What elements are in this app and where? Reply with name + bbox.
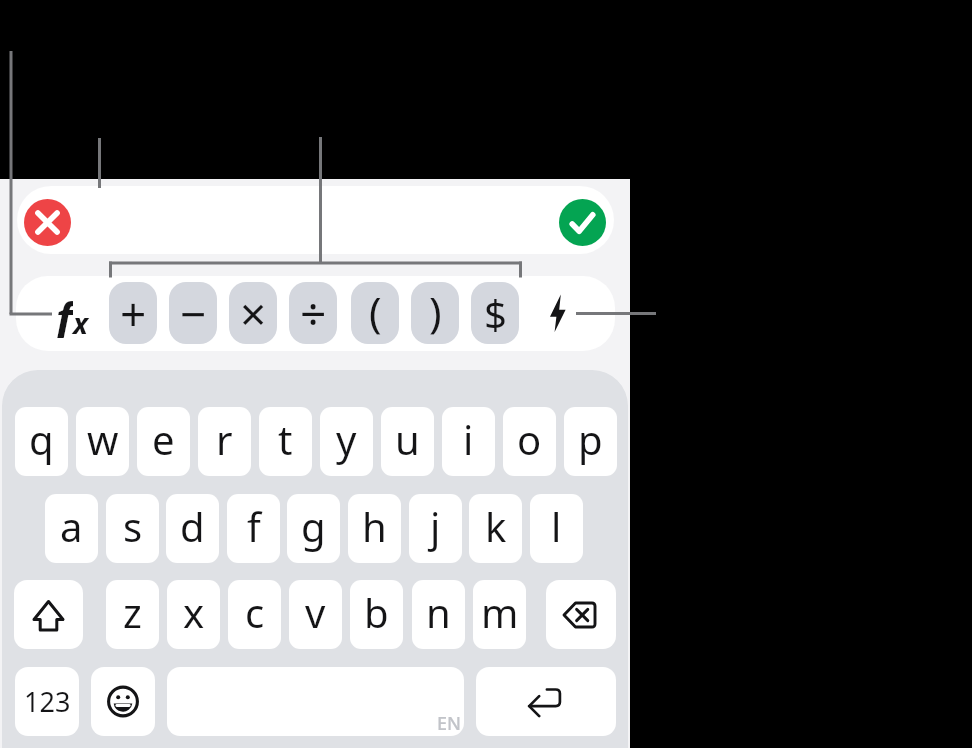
button[interactable]: n bbox=[412, 580, 465, 649]
button[interactable]: p bbox=[564, 407, 617, 476]
button[interactable]: o bbox=[503, 407, 556, 476]
button[interactable]: f bbox=[227, 494, 280, 563]
button[interactable] bbox=[24, 199, 71, 246]
button[interactable]: $ bbox=[471, 282, 519, 344]
button[interactable]: l bbox=[530, 494, 583, 563]
button[interactable]: g bbox=[287, 494, 340, 563]
button[interactable]: + bbox=[109, 282, 157, 344]
staticText: f bbox=[247, 499, 261, 553]
staticText: $ bbox=[484, 286, 507, 340]
staticText: x bbox=[73, 304, 88, 342]
button[interactable]: ÷ bbox=[289, 282, 337, 344]
button[interactable]: h bbox=[348, 494, 401, 563]
staticText: t bbox=[278, 412, 293, 466]
staticText: c bbox=[245, 585, 265, 639]
button[interactable]: j bbox=[409, 494, 462, 563]
button[interactable] bbox=[559, 199, 606, 246]
staticText: r bbox=[216, 412, 233, 466]
button[interactable]: s bbox=[106, 494, 159, 563]
staticText: m bbox=[481, 585, 519, 639]
staticText: EN bbox=[437, 711, 461, 736]
staticText: − bbox=[180, 282, 207, 344]
button[interactable]: v bbox=[289, 580, 342, 649]
staticText: j bbox=[430, 499, 441, 553]
staticText: y bbox=[336, 412, 357, 466]
staticText: e bbox=[152, 412, 175, 466]
button[interactable]: y bbox=[320, 407, 373, 476]
button[interactable]: k bbox=[469, 494, 522, 563]
staticText: u bbox=[395, 412, 420, 466]
staticText: a bbox=[60, 499, 83, 553]
staticText: n bbox=[426, 585, 451, 639]
button[interactable] bbox=[476, 667, 616, 736]
staticText: k bbox=[485, 499, 507, 553]
staticText: v bbox=[305, 585, 326, 639]
button[interactable] bbox=[544, 288, 572, 338]
button[interactable]: t bbox=[259, 407, 312, 476]
button[interactable]: x bbox=[167, 580, 220, 649]
staticText: x bbox=[183, 585, 205, 639]
button[interactable]: f bbox=[46, 288, 98, 338]
staticText: q bbox=[29, 412, 54, 466]
staticText: × bbox=[240, 282, 267, 344]
staticText: + bbox=[120, 282, 147, 344]
button[interactable]: c bbox=[228, 580, 281, 649]
button[interactable]: w bbox=[76, 407, 129, 476]
staticText: ( bbox=[369, 283, 382, 340]
button[interactable]: r bbox=[198, 407, 251, 476]
staticText: ) bbox=[429, 283, 442, 340]
button[interactable]: a bbox=[45, 494, 98, 563]
button[interactable] bbox=[546, 580, 616, 649]
button[interactable]: ) bbox=[411, 282, 459, 344]
staticText: ÷ bbox=[300, 282, 327, 344]
button[interactable]: u bbox=[381, 407, 434, 476]
staticText: w bbox=[87, 412, 119, 466]
button[interactable]: 123 bbox=[15, 667, 79, 736]
staticText: o bbox=[517, 412, 542, 466]
button[interactable] bbox=[167, 667, 464, 736]
button[interactable]: − bbox=[169, 282, 217, 344]
staticText: l bbox=[551, 499, 562, 553]
button[interactable] bbox=[14, 580, 83, 649]
button[interactable]: m bbox=[473, 580, 526, 649]
button[interactable] bbox=[91, 667, 155, 736]
button[interactable]: z bbox=[106, 580, 159, 649]
staticText: p bbox=[578, 412, 603, 466]
button[interactable]: i bbox=[442, 407, 495, 476]
staticText: i bbox=[463, 412, 474, 466]
button[interactable]: ( bbox=[351, 282, 399, 344]
staticText: z bbox=[123, 585, 142, 639]
staticText: 123 bbox=[24, 683, 71, 720]
staticText: h bbox=[362, 499, 387, 553]
staticText: g bbox=[301, 499, 326, 553]
staticText: b bbox=[364, 585, 389, 639]
button[interactable]: b bbox=[350, 580, 403, 649]
staticText: d bbox=[180, 499, 205, 553]
button[interactable]: × bbox=[229, 282, 277, 344]
button[interactable]: e bbox=[137, 407, 190, 476]
staticText: f bbox=[56, 288, 73, 338]
staticText: s bbox=[123, 499, 143, 553]
button[interactable]: q bbox=[15, 407, 68, 476]
button[interactable]: d bbox=[166, 494, 219, 563]
